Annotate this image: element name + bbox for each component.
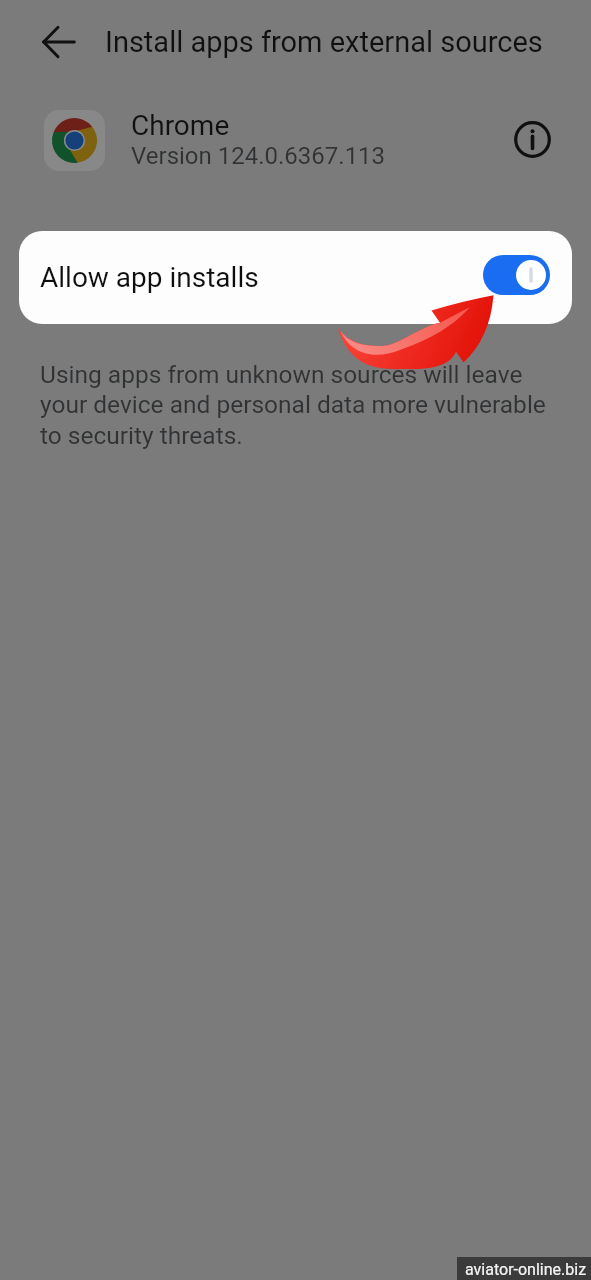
button[interactable]: Allow app installs toggle — [483, 255, 550, 295]
button[interactable]: App info — [509, 116, 555, 162]
button[interactable]: Back — [36, 19, 82, 65]
staticText: aviator-online.biz — [465, 1260, 587, 1279]
staticText: Install apps from external sources — [105, 25, 543, 59]
staticText: Using apps from unknown sources will lea… — [40, 360, 546, 450]
button[interactable]: Allow app installs — [19, 231, 572, 324]
staticText: Version 124.0.6367.113 — [131, 142, 386, 170]
button[interactable]: Chrome — [0, 96, 591, 184]
staticText: Chrome — [131, 109, 230, 142]
staticText: Allow app installs — [40, 261, 259, 294]
